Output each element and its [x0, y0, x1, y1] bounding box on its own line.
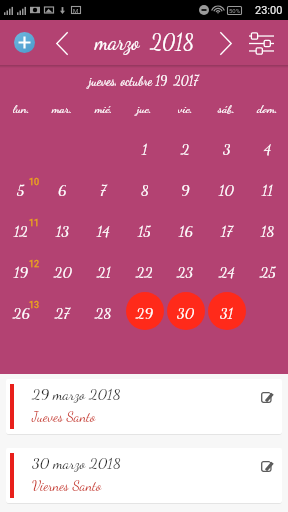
button[interactable]: 25 — [247, 249, 288, 290]
staticText: vie. — [178, 102, 193, 117]
button[interactable]: 5 — [0, 167, 42, 208]
staticText: M — [73, 7, 79, 14]
staticText: 30 — [177, 304, 195, 322]
staticText: 26 — [13, 304, 30, 322]
staticText: 13 — [29, 300, 40, 311]
staticText: 23 — [177, 263, 194, 281]
staticText: 9 — [181, 181, 190, 199]
staticText: 23:00 — [255, 4, 283, 17]
staticText: 29 marzo 2018 — [32, 385, 121, 403]
staticText: 12 — [29, 259, 40, 270]
button[interactable]: 18 — [247, 208, 288, 249]
button[interactable]: 22 — [124, 249, 165, 290]
staticText: dom. — [257, 102, 278, 117]
button[interactable]: 12 — [0, 208, 42, 249]
button[interactable]: 23 — [165, 249, 206, 290]
staticText: 8 — [141, 181, 149, 199]
button[interactable]: 26 — [0, 290, 42, 331]
staticText: 28 — [95, 304, 112, 322]
button[interactable]: Settings — [246, 28, 276, 58]
staticText: 11 — [262, 181, 273, 199]
staticText: 6 — [58, 181, 67, 199]
staticText: 31 — [220, 304, 234, 322]
staticText: 17 — [221, 222, 233, 240]
button[interactable]: 7 — [83, 167, 124, 208]
staticText: Jueves Santo — [32, 408, 96, 425]
staticText: 5 — [17, 181, 25, 199]
button[interactable]: 24 — [206, 249, 247, 290]
button[interactable]: 15 — [124, 208, 165, 249]
staticText: 3 — [223, 140, 231, 158]
staticText: 10 — [29, 177, 40, 188]
button[interactable]: 30 marzo 2018 — [6, 448, 282, 503]
button[interactable]: Previous month — [47, 27, 77, 59]
staticText: 18 — [261, 222, 275, 240]
staticText: 4 — [264, 140, 272, 158]
staticText: 20 — [54, 263, 72, 281]
staticText: 27 — [55, 304, 70, 322]
staticText: Viernes Santo — [32, 477, 102, 494]
staticText: 16 — [179, 222, 193, 240]
staticText: mar. — [52, 102, 73, 117]
button[interactable]: 27 — [42, 290, 83, 331]
staticText: jue. — [137, 102, 152, 117]
staticText: 1 — [142, 140, 148, 158]
button[interactable]: Edit event — [256, 455, 278, 477]
button[interactable]: 21 — [83, 249, 124, 290]
button[interactable]: Next month — [211, 27, 241, 59]
staticText: 12 — [14, 222, 28, 240]
button[interactable]: 14 — [83, 208, 124, 249]
button[interactable]: 30 — [165, 290, 206, 331]
button[interactable]: 4 — [247, 126, 288, 167]
staticText: 11 — [29, 218, 40, 229]
button[interactable]: 13 — [42, 208, 83, 249]
button[interactable]: 20 — [42, 249, 83, 290]
button[interactable]: 17 — [206, 208, 247, 249]
button[interactable]: Edit event — [256, 386, 278, 408]
staticText: 50% — [229, 7, 241, 14]
staticText: 19 — [14, 263, 28, 281]
button[interactable]: 9 — [165, 167, 206, 208]
button[interactable]: 10 — [206, 167, 247, 208]
button[interactable]: 8 — [124, 167, 165, 208]
staticText: 15 — [138, 222, 151, 240]
staticText: 22 — [136, 263, 153, 281]
button[interactable]: 2 — [165, 126, 206, 167]
staticText: 13 — [56, 222, 70, 240]
button[interactable]: 31 — [206, 290, 247, 331]
staticText: 21 — [97, 263, 111, 281]
button[interactable]: 6 — [42, 167, 83, 208]
button[interactable]: 11 — [247, 167, 288, 208]
staticText: mié. — [95, 102, 113, 117]
staticText: 10 — [219, 181, 234, 199]
button[interactable]: 19 — [0, 249, 42, 290]
button[interactable]: 1 — [124, 126, 165, 167]
staticText: lun. — [13, 102, 30, 117]
button[interactable]: 16 — [165, 208, 206, 249]
staticText: 2 — [181, 140, 190, 158]
staticText: marzo 2018 — [95, 30, 194, 55]
button[interactable]: 29 marzo 2018 — [6, 379, 282, 434]
staticText: 30 marzo 2018 — [32, 454, 121, 472]
staticText: 7 — [100, 181, 107, 199]
staticText: 24 — [219, 263, 235, 281]
button[interactable]: 28 — [83, 290, 124, 331]
staticText: 14 — [97, 222, 110, 240]
button[interactable]: Add event — [14, 32, 35, 53]
staticText: jueves, octubre 19 2017 — [89, 73, 199, 88]
staticText: 29 — [136, 304, 153, 322]
button[interactable]: 3 — [206, 126, 247, 167]
button[interactable]: 29 — [124, 290, 165, 331]
staticText: 25 — [260, 263, 276, 281]
staticText: sáb. — [218, 102, 235, 117]
